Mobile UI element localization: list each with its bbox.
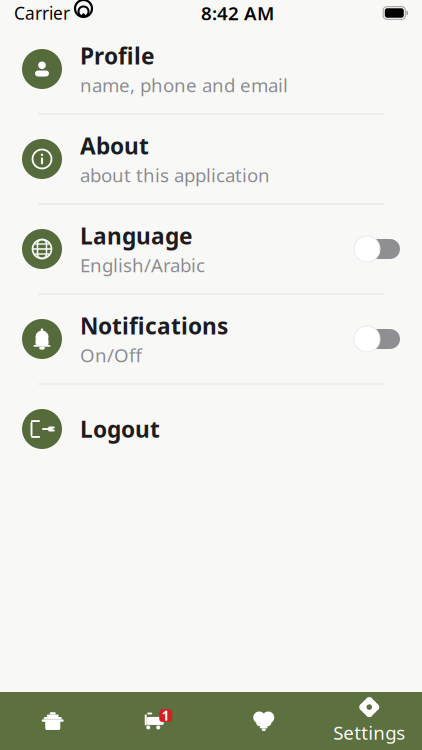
button[interactable]: Home [0, 692, 105, 750]
staticText: 8:42 AM [201, 1, 274, 25]
button[interactable]: Favorites [211, 692, 316, 750]
button[interactable]: Logout [0, 398, 422, 460]
button[interactable]: Cart, 1 item [105, 692, 211, 750]
staticText: On/Off [80, 343, 142, 367]
button[interactable]: Settings [316, 692, 422, 750]
staticText: Settings [333, 720, 405, 745]
button[interactable]: Notifications [0, 308, 422, 370]
staticText: English/Arabic [80, 253, 205, 277]
button[interactable]: Profile [0, 38, 422, 100]
staticText: Carrier [14, 1, 70, 24]
staticText: Notifications [80, 311, 228, 341]
button[interactable]: Language [0, 218, 422, 280]
staticText: About [80, 131, 149, 161]
staticText: name, phone and email [80, 73, 288, 97]
staticText: Language [80, 221, 193, 251]
button[interactable]: About [0, 128, 422, 190]
staticText: 1 [162, 707, 170, 724]
staticText: about this application [80, 163, 270, 187]
staticText: Logout [80, 414, 160, 444]
staticText: Profile [80, 41, 155, 71]
